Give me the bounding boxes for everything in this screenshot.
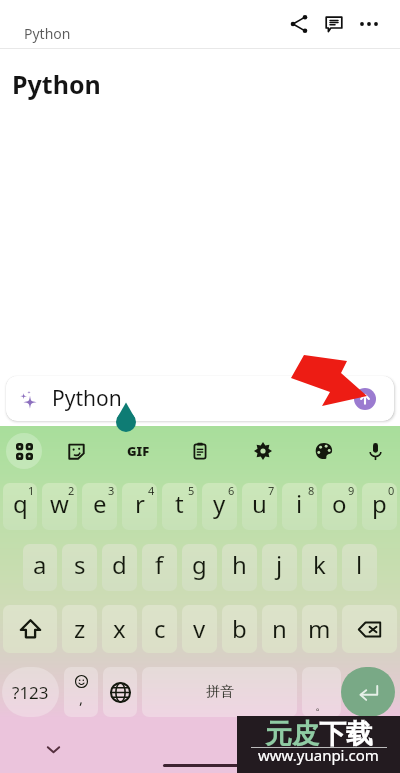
button[interactable]: Themes — [302, 429, 346, 473]
button[interactable]: Change language — [103, 667, 137, 717]
staticText: www.yuanpi.com — [258, 745, 379, 765]
button[interactable]: g — [182, 544, 217, 591]
staticText: 3 — [108, 483, 115, 498]
button[interactable]: p — [362, 483, 397, 530]
button[interactable]: s — [62, 544, 97, 591]
button[interactable]: k — [302, 544, 337, 591]
button[interactable]: d — [102, 544, 137, 591]
staticText: 7 — [268, 483, 275, 498]
button[interactable]: Shift — [3, 605, 57, 653]
button[interactable]: o — [322, 483, 357, 530]
staticText: 。 — [315, 697, 328, 713]
button[interactable]: r — [122, 483, 157, 530]
staticText: s — [74, 548, 86, 581]
button[interactable]: ?123 — [2, 667, 59, 717]
button[interactable]: More options — [354, 9, 384, 39]
staticText: v — [193, 612, 206, 645]
button[interactable]: Voice input — [353, 429, 397, 473]
button[interactable]: f — [142, 544, 177, 591]
button[interactable]: a — [23, 544, 57, 591]
staticText: j — [276, 548, 283, 581]
staticText: Python — [52, 384, 122, 413]
button[interactable]: j — [262, 544, 297, 591]
button[interactable]: GIF — [116, 429, 160, 473]
button[interactable]: Stickers — [54, 429, 98, 473]
staticText: 元皮 — [265, 717, 319, 751]
staticText: z — [74, 612, 86, 645]
staticText: 6 — [228, 483, 235, 498]
button[interactable]: c — [142, 605, 177, 653]
button[interactable]: Settings — [241, 429, 285, 473]
staticText: 9 — [348, 483, 355, 498]
staticText: 拼音 — [206, 683, 234, 701]
button[interactable]: z — [62, 605, 97, 653]
staticText: d — [112, 548, 127, 581]
button[interactable]: Enter — [341, 667, 395, 717]
button[interactable]: u — [242, 483, 277, 530]
button[interactable]: l — [342, 544, 377, 591]
button[interactable]: 。 — [302, 667, 341, 717]
staticText: , — [79, 688, 84, 708]
staticText: 8 — [308, 483, 315, 498]
staticText: r — [135, 487, 145, 520]
button[interactable]: e — [82, 483, 117, 530]
button[interactable]: Comments — [319, 9, 349, 39]
staticText: o — [332, 487, 347, 520]
button[interactable]: Clipboard — [178, 429, 222, 473]
staticText: t — [175, 487, 184, 520]
button[interactable]: Share — [284, 9, 314, 39]
button[interactable]: Emoji and comma — [64, 667, 98, 717]
staticText: x — [113, 612, 126, 645]
staticText: 2 — [68, 483, 75, 498]
staticText: Python — [12, 67, 101, 101]
staticText: 5 — [188, 483, 195, 498]
staticText: q — [13, 487, 28, 520]
staticText: h — [232, 548, 247, 581]
staticText: m — [308, 612, 331, 645]
staticText: 1 — [28, 483, 35, 498]
staticText: k — [313, 548, 326, 581]
button[interactable]: n — [262, 605, 297, 653]
button[interactable]: i — [282, 483, 317, 530]
button[interactable]: b — [222, 605, 257, 653]
button[interactable]: w — [42, 483, 77, 530]
staticText: Python — [24, 24, 71, 43]
button[interactable]: v — [182, 605, 217, 653]
staticText: c — [154, 612, 166, 645]
staticText: e — [93, 487, 107, 520]
staticText: 下载 — [319, 717, 373, 751]
button[interactable]: Send — [354, 388, 376, 410]
button[interactable]: Hide keyboard — [38, 734, 68, 764]
staticText: y — [213, 487, 226, 520]
staticText: f — [155, 548, 164, 581]
staticText: n — [272, 612, 287, 645]
staticText: w — [50, 487, 69, 520]
button[interactable]: h — [222, 544, 257, 591]
staticText: 0 — [388, 483, 395, 498]
staticText: b — [232, 612, 247, 645]
button[interactable]: Python — [6, 376, 394, 421]
button[interactable]: Backspace — [342, 605, 397, 653]
button[interactable]: x — [102, 605, 137, 653]
staticText: ?123 — [12, 681, 49, 704]
staticText: GIF — [127, 442, 150, 460]
staticText: i — [296, 487, 303, 520]
staticText: l — [356, 548, 363, 581]
button[interactable]: q — [3, 483, 37, 530]
staticText: g — [192, 548, 207, 581]
staticText: 4 — [148, 483, 155, 498]
button[interactable]: y — [202, 483, 237, 530]
button[interactable]: m — [302, 605, 337, 653]
staticText: p — [372, 487, 387, 520]
button[interactable]: t — [162, 483, 197, 530]
button[interactable]: Apps — [2, 429, 46, 473]
staticText: a — [33, 548, 47, 581]
staticText: u — [252, 487, 267, 520]
button[interactable]: 拼音 — [142, 667, 297, 717]
